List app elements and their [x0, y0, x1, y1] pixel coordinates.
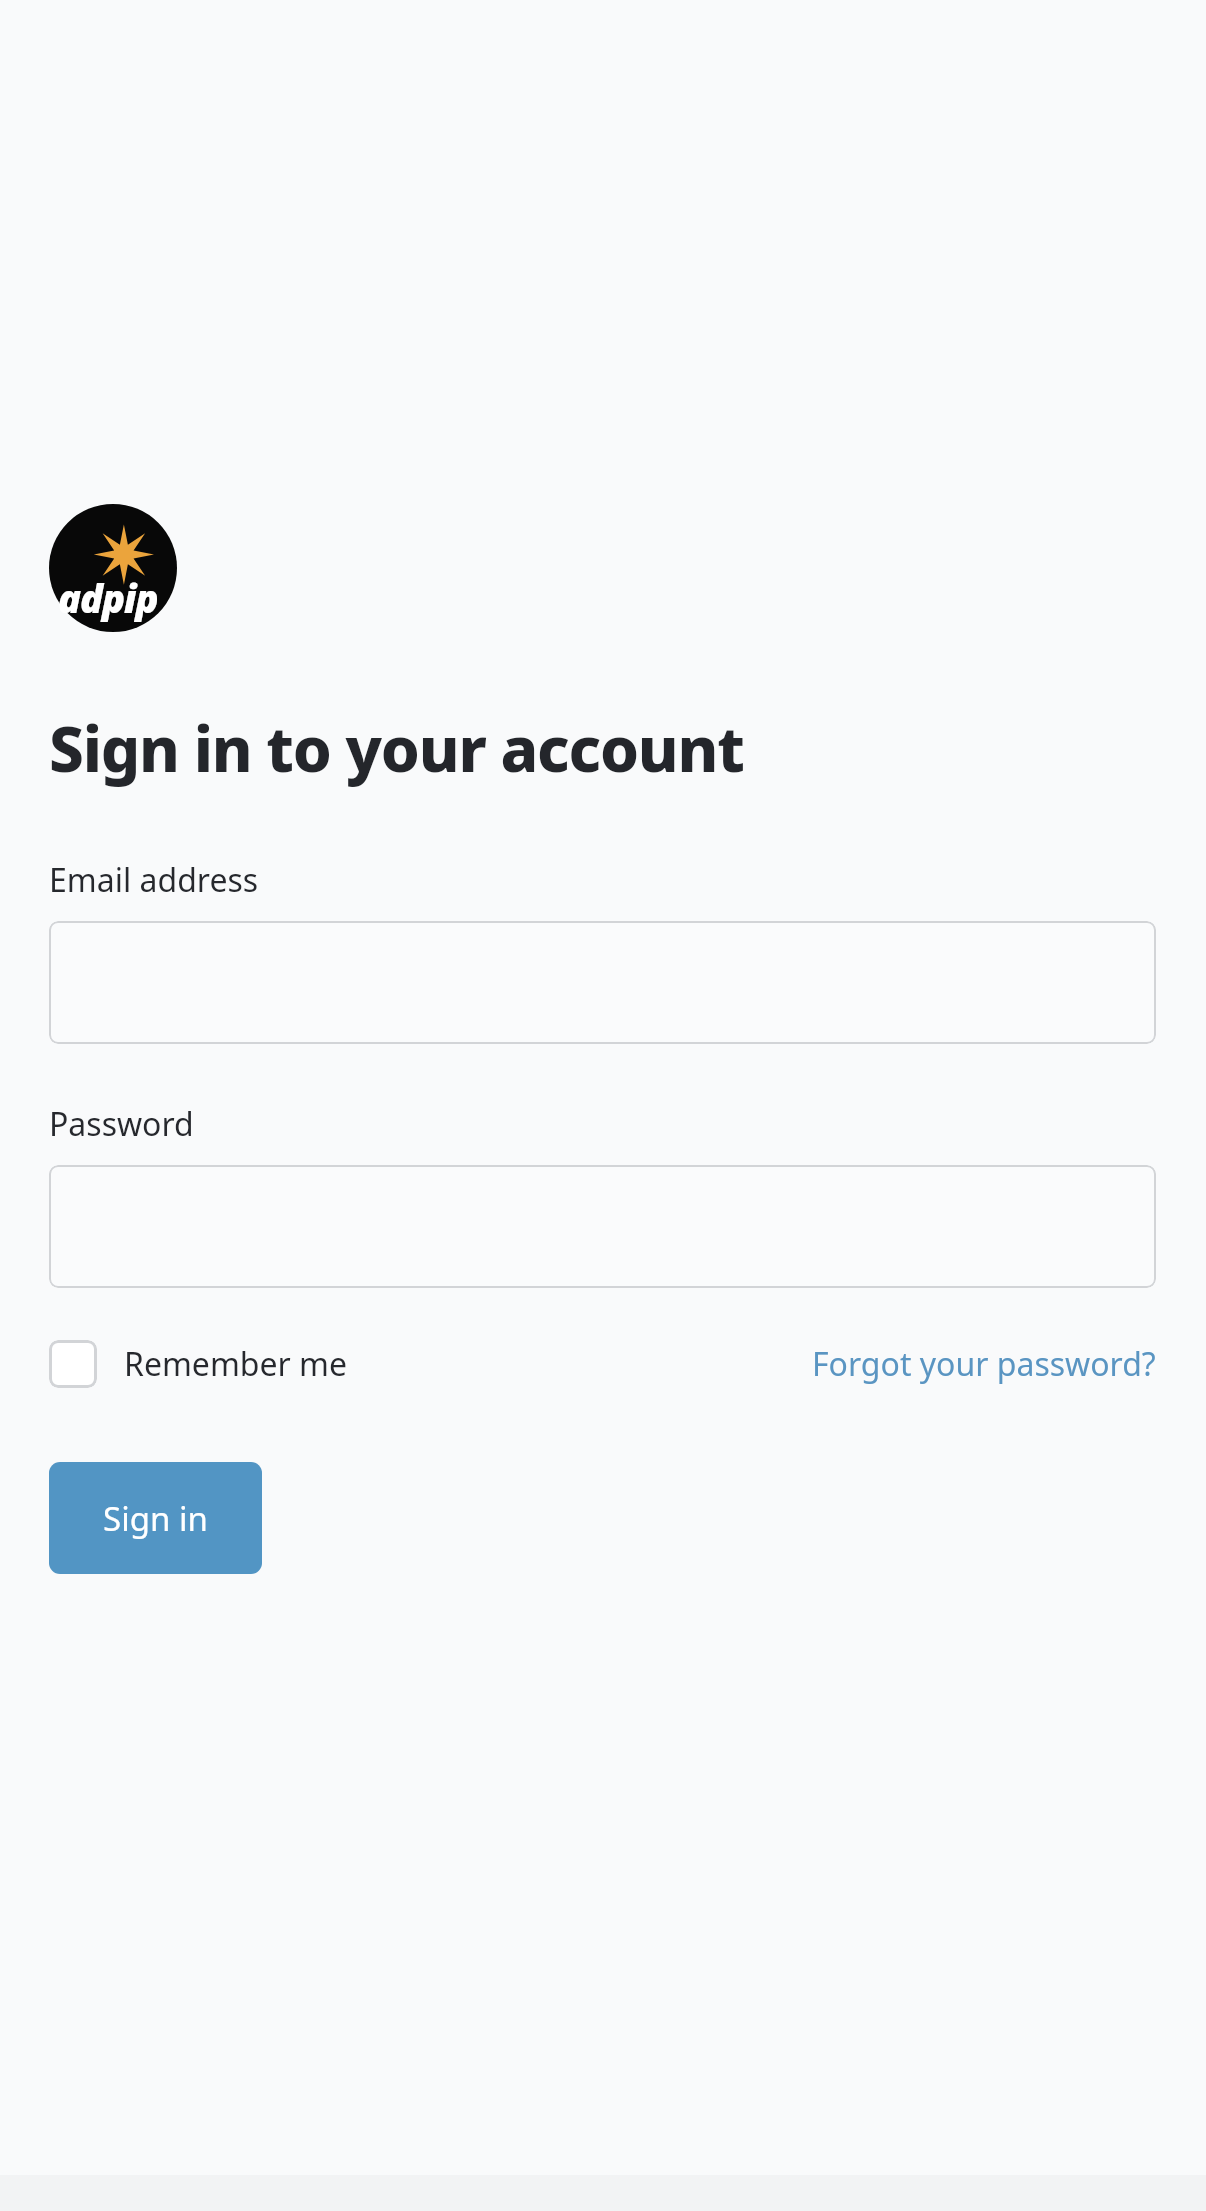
button[interactable]: Remember me — [49, 1340, 348, 1388]
staticText: Sign in to your account — [49, 706, 744, 790]
button[interactable]: Forgot your password? — [812, 1342, 1156, 1386]
staticText: Email address — [49, 858, 259, 902]
button[interactable] — [49, 1165, 1156, 1288]
staticText: adpipe — [58, 572, 177, 632]
button[interactable] — [49, 921, 1156, 1044]
staticText: Sign in — [103, 1496, 208, 1541]
other: adpipe logo — [49, 504, 177, 632]
staticText: Forgot your password? — [812, 1342, 1156, 1386]
staticText: Password — [49, 1102, 194, 1146]
button[interactable]: Sign in — [49, 1462, 262, 1574]
staticText: Remember me — [124, 1342, 348, 1386]
